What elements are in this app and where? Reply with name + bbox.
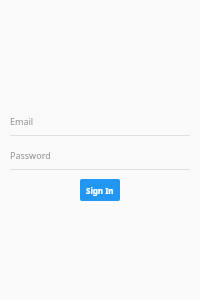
- button[interactable]: Sign In: [80, 179, 120, 201]
- staticText: Email: [10, 115, 34, 127]
- staticText: Sign In: [86, 185, 114, 196]
- button[interactable]: Password: [10, 141, 190, 170]
- button[interactable]: Email: [10, 107, 190, 136]
- staticText: Password: [10, 149, 51, 161]
